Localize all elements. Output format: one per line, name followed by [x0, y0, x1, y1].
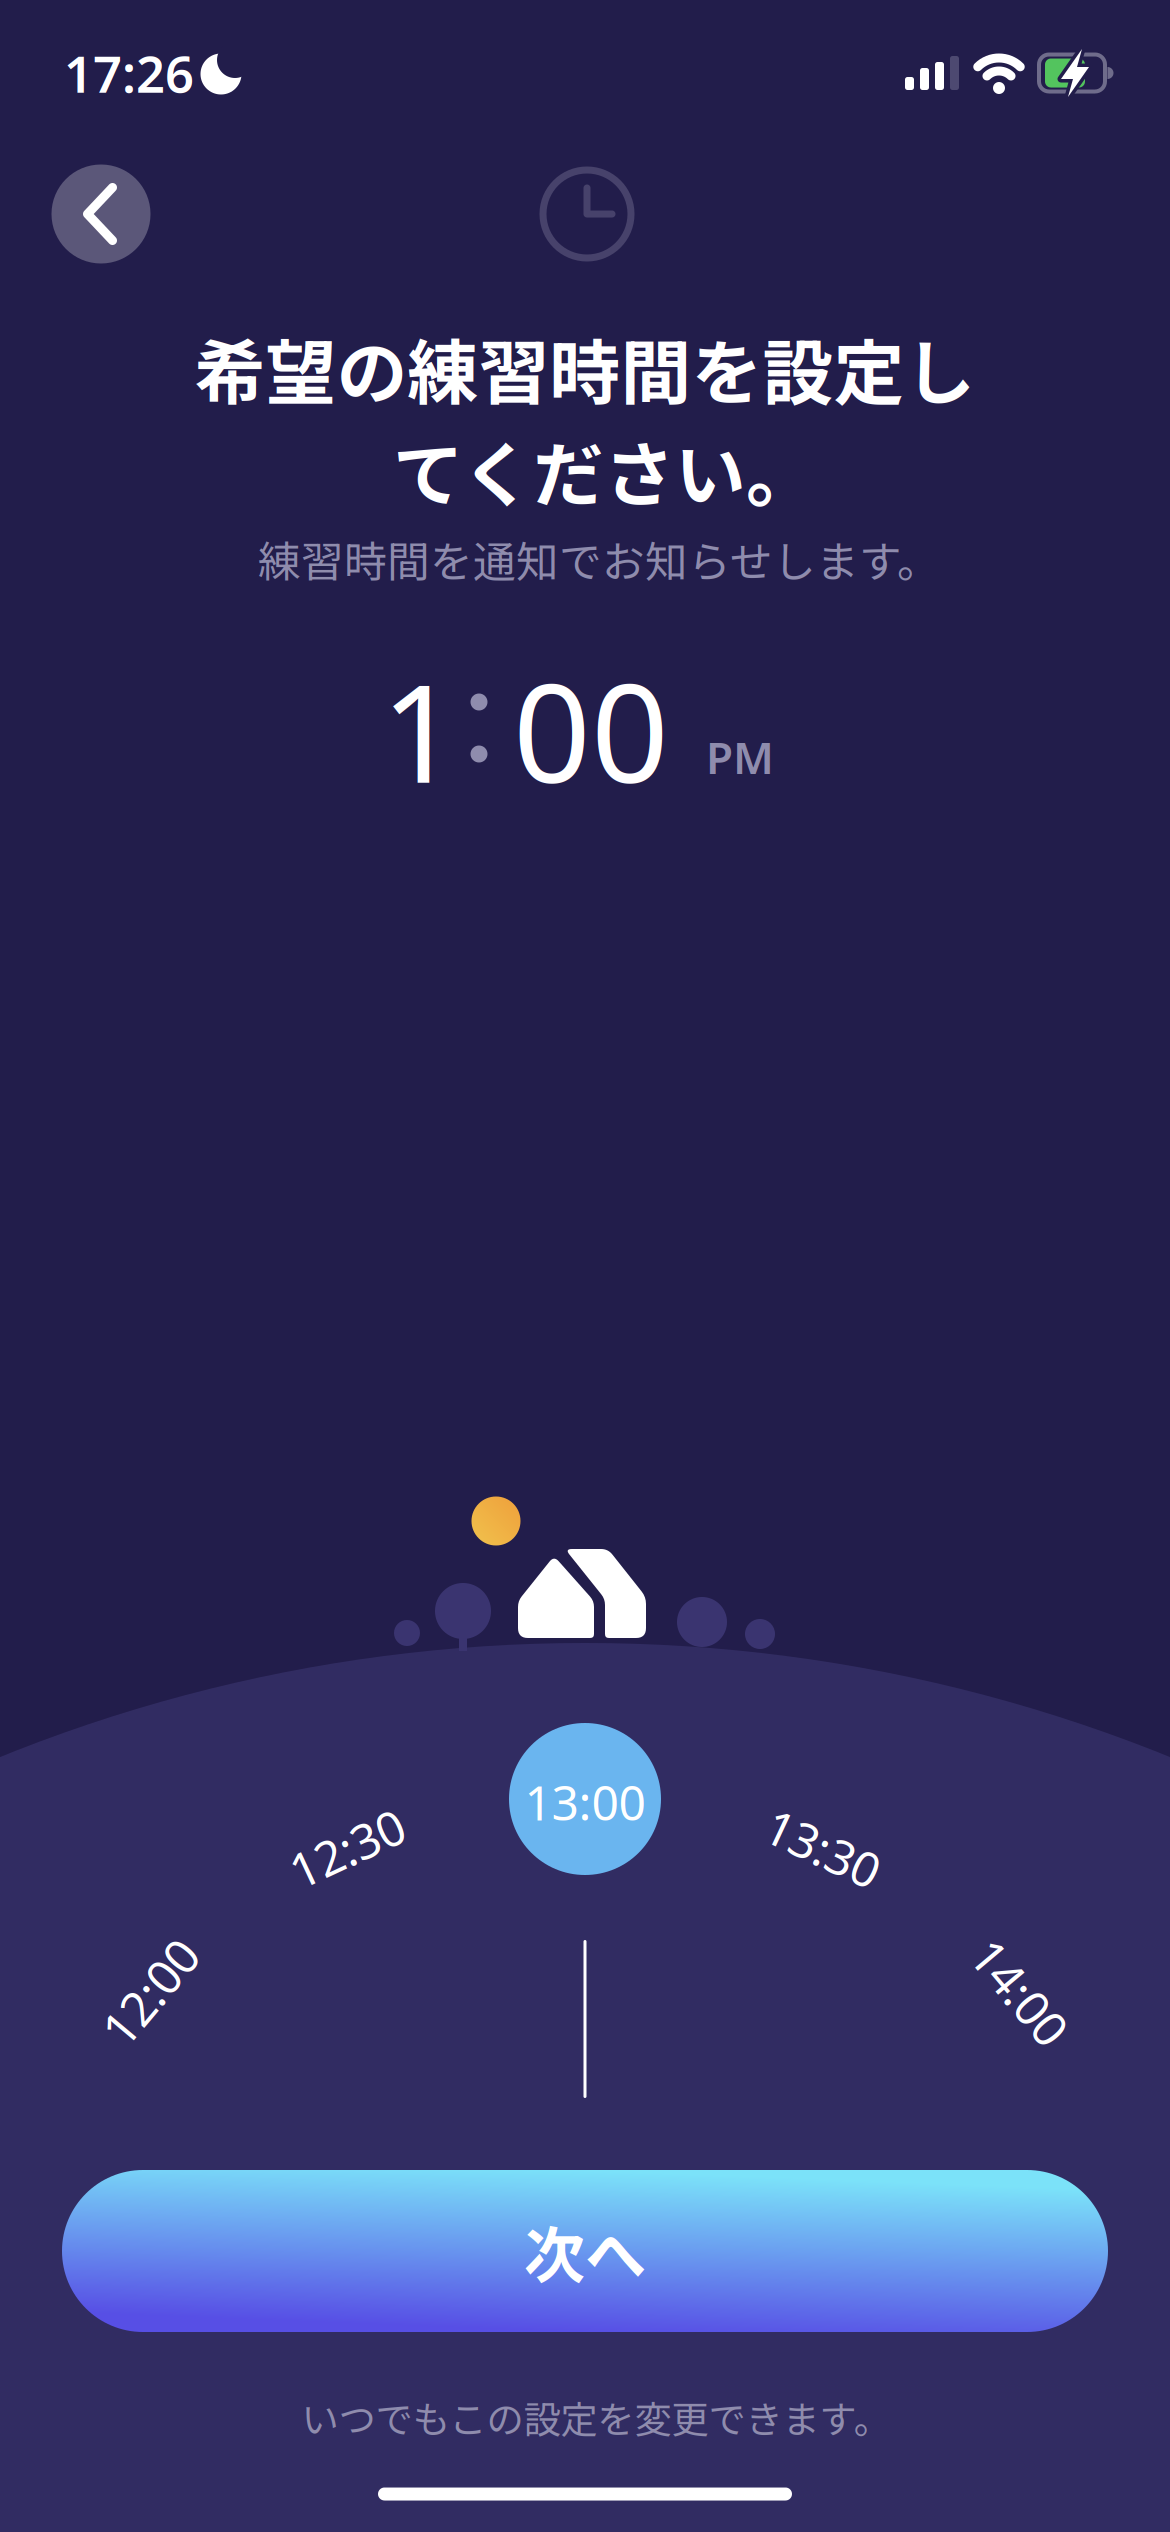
staticText: 希望の練習時間を設定し — [194, 317, 975, 419]
staticText: てください。 — [393, 419, 817, 521]
button[interactable]: 14:00 — [959, 1960, 1080, 2024]
staticText: いつでもこの設定を変更できます。 — [301, 2390, 890, 2444]
button[interactable]: 12:30 — [286, 1816, 407, 1880]
staticText: 14:00 — [959, 1960, 1080, 2024]
staticText: 12:00 — [89, 1960, 210, 2024]
button[interactable]: 次へ — [62, 2170, 1108, 2332]
staticText: 13:30 — [762, 1816, 883, 1880]
staticText: PM — [706, 728, 774, 786]
staticText: 00 — [513, 640, 669, 820]
staticText: 13:00 — [524, 1770, 645, 1834]
staticText: 1 — [381, 640, 459, 820]
button[interactable]: 13:30 — [762, 1816, 883, 1880]
button[interactable]: 12:00 — [89, 1960, 210, 2024]
staticText: 練習時間を通知でお知らせします。 — [258, 528, 940, 590]
button[interactable]: 13:00 — [509, 1723, 661, 1875]
staticText: 12:30 — [286, 1816, 407, 1880]
staticText: 次へ — [524, 2207, 646, 2295]
staticText: 17:26 — [64, 39, 194, 107]
button[interactable]: Back — [51, 164, 150, 263]
